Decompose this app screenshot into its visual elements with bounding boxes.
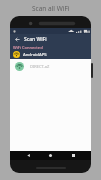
button[interactable]: DIRECT-aZ bbox=[10, 59, 91, 73]
button[interactable]: AndroidAP5 bbox=[10, 50, 91, 59]
button[interactable]: Home bbox=[46, 151, 55, 160]
button[interactable]: Navigate up bbox=[13, 35, 21, 43]
button[interactable]: Back bbox=[24, 151, 33, 160]
button[interactable]: Recent apps bbox=[69, 151, 78, 160]
staticText: Scan WiFi bbox=[24, 36, 47, 43]
staticText: DIRECT-aZ bbox=[30, 64, 50, 69]
staticText: Scan all WiFi bbox=[32, 4, 70, 13]
staticText: AndroidAP5 bbox=[23, 52, 47, 58]
staticText: WiFi Connected bbox=[13, 45, 43, 50]
